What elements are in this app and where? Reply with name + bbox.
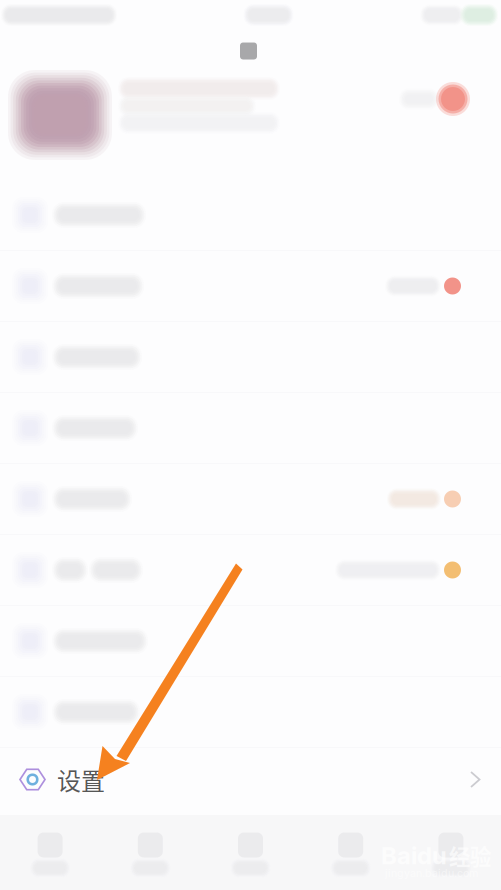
button[interactable]	[0, 677, 501, 748]
staticText: 经验	[449, 840, 491, 871]
button[interactable]	[0, 251, 501, 322]
button[interactable]: 设置	[0, 748, 501, 811]
button[interactable]	[0, 180, 501, 251]
button[interactable]	[0, 464, 501, 535]
staticText: Baidu	[381, 841, 447, 870]
button[interactable]: Tab	[100, 815, 200, 890]
staticText: jingyan.baidu.com	[385, 866, 478, 879]
button[interactable]	[0, 606, 501, 677]
button[interactable]: Tab	[0, 815, 100, 890]
button[interactable]: Tab	[200, 815, 301, 890]
button[interactable]	[0, 535, 501, 606]
button[interactable]	[0, 66, 501, 180]
button[interactable]: Tab	[401, 815, 501, 890]
staticText: 设置	[57, 762, 105, 797]
button[interactable]: Tab	[301, 815, 401, 890]
button[interactable]	[0, 322, 501, 393]
button[interactable]	[0, 393, 501, 464]
